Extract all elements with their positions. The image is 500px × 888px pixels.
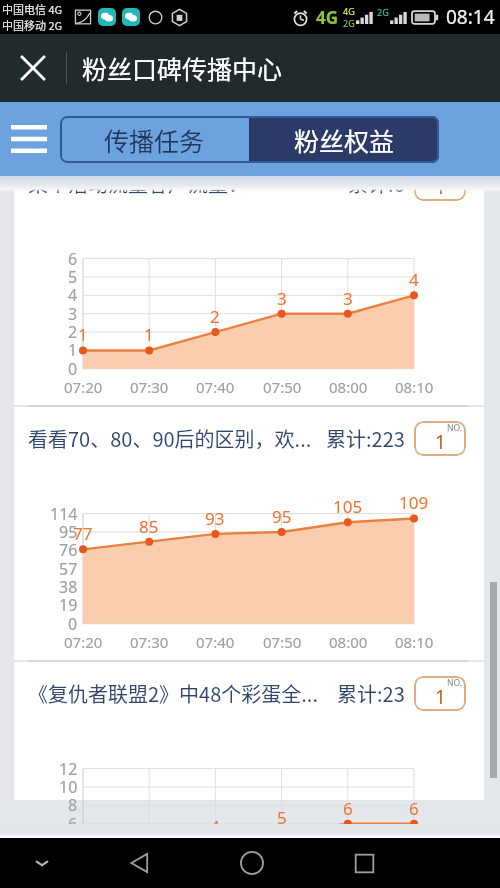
staticText: 07:40 <box>196 632 235 652</box>
button[interactable]: Close <box>12 47 54 89</box>
staticText: 4 <box>409 268 419 291</box>
staticText: 08:00 <box>329 377 368 397</box>
staticText: 1 <box>435 176 446 200</box>
staticText: 114 <box>50 503 78 525</box>
staticText: 1 <box>435 684 446 710</box>
staticText: 6 <box>343 797 353 820</box>
staticText: 08:10 <box>395 632 434 652</box>
staticText: 累计:223 <box>326 424 405 453</box>
button[interactable]: Home <box>196 838 308 888</box>
staticText: 95 <box>59 521 78 543</box>
staticText: 76 <box>59 539 78 561</box>
staticText: NO. <box>447 677 463 689</box>
staticText: 08:14 <box>446 4 495 30</box>
staticText: 0 <box>68 358 78 380</box>
staticText: 4 <box>68 284 78 306</box>
staticText: 8 <box>68 794 78 816</box>
staticText: 08:10 <box>395 377 434 397</box>
button[interactable]: 粉丝权益 <box>249 116 439 163</box>
button[interactable]: 某个活动流量客户流量： <box>14 176 484 214</box>
staticText: 109 <box>399 491 429 514</box>
staticText: 累计:6 <box>348 176 405 198</box>
staticText: 4 <box>210 815 220 824</box>
staticText: 95 <box>272 505 292 528</box>
staticText: 6 <box>68 813 78 824</box>
staticText: NO. <box>447 176 463 179</box>
staticText: 传播任务 <box>104 122 205 158</box>
staticText: 85 <box>139 515 159 538</box>
staticText: 2G <box>343 17 355 29</box>
staticText: 3 <box>68 303 78 325</box>
button[interactable]: 传播任务 <box>60 116 249 163</box>
staticText: 3 <box>343 287 353 310</box>
staticText: 2 <box>68 321 78 343</box>
button[interactable]: Menu <box>5 115 53 163</box>
staticText: 07:50 <box>263 377 302 397</box>
staticText: 粉丝权益 <box>294 122 395 158</box>
staticText: 105 <box>333 495 363 518</box>
staticText: 07:30 <box>130 632 169 652</box>
button[interactable]: Recents <box>308 838 420 888</box>
staticText: 粉丝口碑传播中心 <box>82 50 283 86</box>
button[interactable]: 看看70、80、90后的区别，欢... <box>14 407 484 469</box>
staticText: 1 <box>78 323 88 346</box>
staticText: 07:20 <box>64 377 103 397</box>
staticText: 77 <box>73 522 93 545</box>
staticText: 12 <box>59 758 78 780</box>
staticText: 《复仇者联盟2》中48个彩蛋全... <box>28 679 333 708</box>
staticText: 0 <box>68 613 78 635</box>
staticText: 某个活动流量客户流量： <box>28 176 344 198</box>
staticText: 看看70、80、90后的区别，欢... <box>28 424 322 453</box>
staticText: 2 <box>210 305 220 328</box>
staticText: 中国电信 4G <box>2 1 63 17</box>
staticText: 38 <box>59 576 78 598</box>
staticText: 07:20 <box>64 632 103 652</box>
staticText: 5 <box>68 266 78 288</box>
staticText: 1 <box>435 429 446 455</box>
staticText: 1 <box>68 339 78 361</box>
staticText: 2G <box>377 6 389 18</box>
button[interactable]: 《复仇者联盟2》中48个彩蛋全... <box>14 662 484 724</box>
staticText: 08:00 <box>329 632 368 652</box>
staticText: 中国移动 2G <box>2 17 63 33</box>
staticText: 3 <box>277 287 287 310</box>
button[interactable]: Hide keyboard <box>0 838 84 888</box>
staticText: NO. <box>447 422 463 434</box>
staticText: 4G <box>316 6 339 29</box>
staticText: 累计:23 <box>337 679 405 708</box>
staticText: 07:50 <box>263 632 302 652</box>
staticText: 4G <box>343 5 355 17</box>
staticText: 57 <box>59 558 78 580</box>
staticText: 07:40 <box>196 377 235 397</box>
staticText: 6 <box>409 797 419 820</box>
staticText: 19 <box>59 594 78 616</box>
staticText: 1 <box>144 323 154 346</box>
staticText: 10 <box>59 776 78 798</box>
staticText: 6 <box>68 248 78 270</box>
staticText: 93 <box>205 507 225 530</box>
staticText: 5 <box>277 806 287 824</box>
staticText: 07:30 <box>130 377 169 397</box>
button[interactable]: Back <box>84 838 196 888</box>
